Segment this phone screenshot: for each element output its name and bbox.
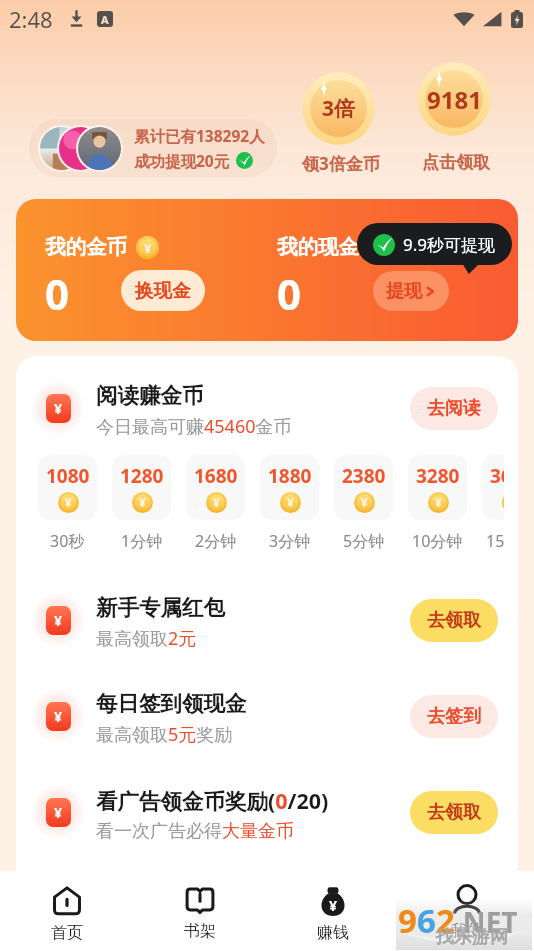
button[interactable]: 1280 xyxy=(112,455,171,552)
button[interactable]: 领3倍金币 xyxy=(302,72,375,145)
staticText: 我的现金 xyxy=(277,234,359,260)
staticText: 15分钟 xyxy=(486,530,504,552)
button[interactable]: 1880 xyxy=(260,455,319,552)
staticText: 最高领取2元 xyxy=(96,626,197,651)
staticText: 成功提现20元 xyxy=(134,150,230,171)
staticText: 新手专属红包 xyxy=(96,594,225,621)
staticText: 2分钟 xyxy=(195,530,237,552)
staticText: 今日最高可赚45460金币 xyxy=(96,414,292,439)
staticText: 阅读赚金币 xyxy=(96,382,204,409)
button[interactable]: 去领取 xyxy=(410,599,498,642)
button[interactable]: ¥ xyxy=(266,871,400,951)
staticText: 每日签到领现金 xyxy=(96,690,247,717)
staticText: ¥ xyxy=(361,495,368,511)
staticText: 看广告领金币奖励(0/20) xyxy=(96,786,329,815)
button[interactable]: 去阅读 xyxy=(410,387,498,430)
button[interactable]: 我的 xyxy=(400,871,534,951)
staticText: 去签到 xyxy=(427,705,481,728)
staticText: 累计已有138292人 xyxy=(134,125,265,146)
staticText: 我的 xyxy=(451,921,483,941)
staticText: 1880 xyxy=(268,463,312,489)
staticText: .NET xyxy=(455,903,518,941)
staticText: ¥ xyxy=(287,495,294,511)
staticText: 9181 xyxy=(427,83,482,116)
staticText: 看一次广告必得大量金币 xyxy=(96,820,294,843)
staticText: 1680 xyxy=(194,463,238,489)
staticText: 3分钟 xyxy=(269,530,311,552)
staticText: 找乐游网 xyxy=(436,926,508,949)
button[interactable]: 首页 xyxy=(0,871,133,951)
staticText: 最高领取5元奖励 xyxy=(96,722,233,747)
staticText: 30秒 xyxy=(50,530,85,552)
staticText: 10分钟 xyxy=(412,530,463,552)
staticText: 1分钟 xyxy=(121,530,163,552)
other: 我的 xyxy=(452,885,482,915)
staticText: 3280 xyxy=(416,463,460,489)
button[interactable]: 累计已有138292人 xyxy=(29,119,277,177)
staticText: 3680 xyxy=(490,463,504,489)
staticText: ¥ xyxy=(54,611,63,630)
staticText: ¥ xyxy=(54,803,63,822)
button[interactable]: 2380 xyxy=(334,455,393,552)
button[interactable]: 书架 xyxy=(133,871,266,951)
button[interactable]: 点击领取 xyxy=(417,62,491,136)
staticText: 0 xyxy=(45,265,70,322)
staticText: 2 xyxy=(436,898,455,943)
staticText: 首页 xyxy=(51,923,83,943)
staticText: ¥ xyxy=(435,495,442,511)
button[interactable]: 去签到 xyxy=(410,695,498,738)
staticText: 1080 xyxy=(46,463,90,489)
staticText: 换现金 xyxy=(135,279,191,302)
staticText: ¥ xyxy=(54,707,63,726)
staticText: ¥ xyxy=(213,495,220,511)
staticText: 去领取 xyxy=(427,609,481,632)
staticText: 2:48 xyxy=(9,4,53,34)
button[interactable]: 1680 xyxy=(186,455,245,552)
staticText: 0 xyxy=(277,265,302,322)
staticText: ¥ xyxy=(144,239,152,256)
staticText: ¥ xyxy=(54,399,63,418)
staticText: 提现 xyxy=(386,280,422,303)
staticText: 领3倍金币 xyxy=(302,152,380,175)
button[interactable]: 去领取 xyxy=(410,791,498,834)
button[interactable]: 3280 xyxy=(408,455,467,552)
button[interactable]: 换现金 xyxy=(121,270,205,311)
button[interactable]: 提现 xyxy=(373,271,449,311)
staticText: 去阅读 xyxy=(427,397,481,420)
staticText: 我的金币 xyxy=(45,234,127,260)
staticText: ¥ xyxy=(329,896,338,915)
staticText: 9 xyxy=(398,898,417,943)
staticText: 1280 xyxy=(120,463,164,489)
staticText: 赚钱 xyxy=(317,923,349,943)
staticText: 书架 xyxy=(184,921,216,941)
button[interactable]: 3680 xyxy=(482,455,504,552)
staticText: ¥ xyxy=(139,495,146,511)
staticText: 6 xyxy=(417,898,436,943)
staticText: A xyxy=(101,12,109,27)
staticText: 3倍 xyxy=(322,94,356,123)
button[interactable]: 1080 xyxy=(38,455,97,552)
staticText: 9.9秒可提现 xyxy=(403,233,496,256)
staticText: 点击领取 xyxy=(422,152,490,173)
staticText: 2380 xyxy=(342,463,386,489)
staticText: ¥ xyxy=(65,495,72,511)
staticText: 5分钟 xyxy=(343,530,385,552)
staticText: 去领取 xyxy=(427,801,481,824)
